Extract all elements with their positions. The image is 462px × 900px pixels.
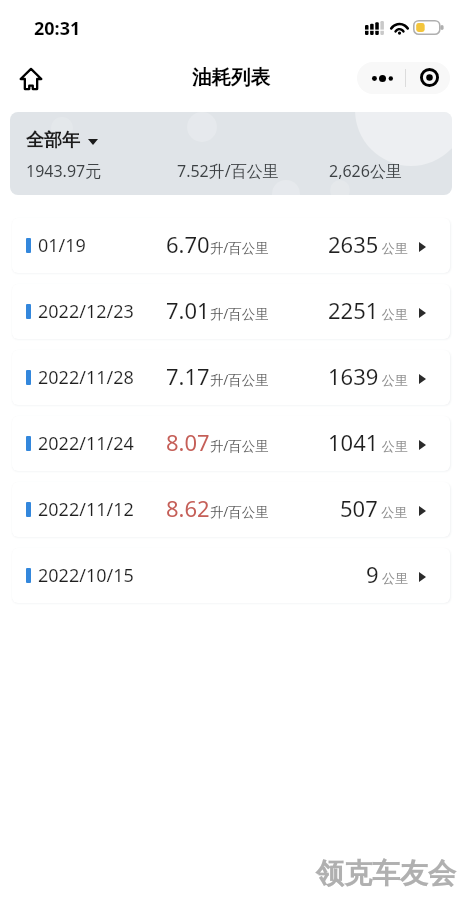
staticText: 2251 公里 xyxy=(328,295,408,325)
staticText: 01/19 xyxy=(38,233,86,258)
button[interactable]: 2022/11/24 xyxy=(12,416,450,471)
staticText: 2,626公里 xyxy=(329,160,402,182)
staticText: 领克车友会 xyxy=(316,856,456,891)
button[interactable]: 2022/11/12 xyxy=(12,482,450,537)
staticText: 2022/10/15 xyxy=(38,563,134,588)
staticText: 1943.97元 xyxy=(26,160,102,182)
staticText: 20:31 xyxy=(34,16,81,41)
staticText: 507 公里 xyxy=(340,493,408,523)
staticText: 8.07升/百公里 xyxy=(166,427,269,457)
staticText: 9 公里 xyxy=(366,559,408,589)
button[interactable]: 2022/12/23 xyxy=(12,284,450,339)
button[interactable]: More options xyxy=(357,62,405,94)
button[interactable]: 2022/11/28 xyxy=(12,350,450,405)
staticText: 油耗列表 xyxy=(192,65,270,90)
staticText: 2022/11/28 xyxy=(38,365,134,390)
button[interactable]: Home xyxy=(10,58,52,100)
staticText: 7.52升/百公里 xyxy=(177,160,279,182)
staticText: 2022/11/24 xyxy=(38,431,134,456)
button[interactable]: 01/19 xyxy=(12,218,450,273)
staticText: 全部年 xyxy=(26,129,80,152)
staticText: 2022/12/23 xyxy=(38,299,134,324)
button[interactable]: Close mini program xyxy=(406,62,450,94)
staticText: 7.01升/百公里 xyxy=(166,295,269,325)
staticText: 6.70升/百公里 xyxy=(166,229,269,259)
staticText: 7.17升/百公里 xyxy=(166,361,269,391)
staticText: 8.62升/百公里 xyxy=(166,493,269,523)
staticText: 1041 公里 xyxy=(328,427,408,457)
staticText: 1639 公里 xyxy=(328,361,408,391)
button[interactable]: 全部年 xyxy=(10,112,452,195)
button[interactable]: 2022/10/15 xyxy=(12,548,450,603)
staticText: 2022/11/12 xyxy=(38,497,134,522)
staticText: 2635 公里 xyxy=(328,229,408,259)
